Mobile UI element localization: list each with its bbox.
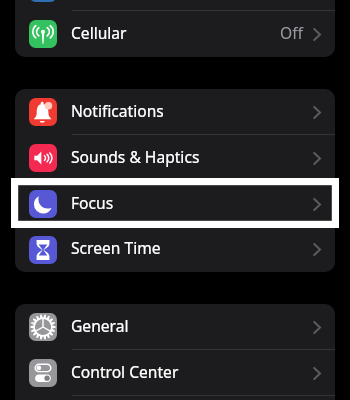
- staticText: Screen Time: [71, 237, 161, 258]
- staticText: Off: [280, 22, 303, 43]
- staticText: Control Center: [71, 361, 179, 382]
- other: More: [313, 367, 321, 380]
- other: More: [313, 152, 321, 165]
- other: More: [313, 198, 321, 211]
- staticText: Focus: [71, 192, 114, 213]
- button[interactable]: General: [15, 304, 335, 350]
- other: More: [313, 106, 321, 119]
- other: More: [313, 243, 321, 256]
- button[interactable]: Control Center: [15, 350, 335, 396]
- staticText: Sounds & Haptics: [71, 146, 200, 167]
- button[interactable]: Notifications: [15, 89, 335, 135]
- button[interactable]: Screen Time: [15, 227, 335, 272]
- other: More: [313, 321, 321, 334]
- staticText: Notifications: [71, 100, 164, 121]
- button[interactable]: Sounds & Haptics: [15, 135, 335, 181]
- staticText: General: [71, 315, 129, 336]
- button[interactable]: Focus: [15, 181, 335, 227]
- staticText: Cellular: [71, 22, 127, 43]
- button[interactable]: Cellular: [15, 11, 335, 57]
- button[interactable]: Wi-Fi: [15, 0, 335, 11]
- other: More: [313, 28, 321, 41]
